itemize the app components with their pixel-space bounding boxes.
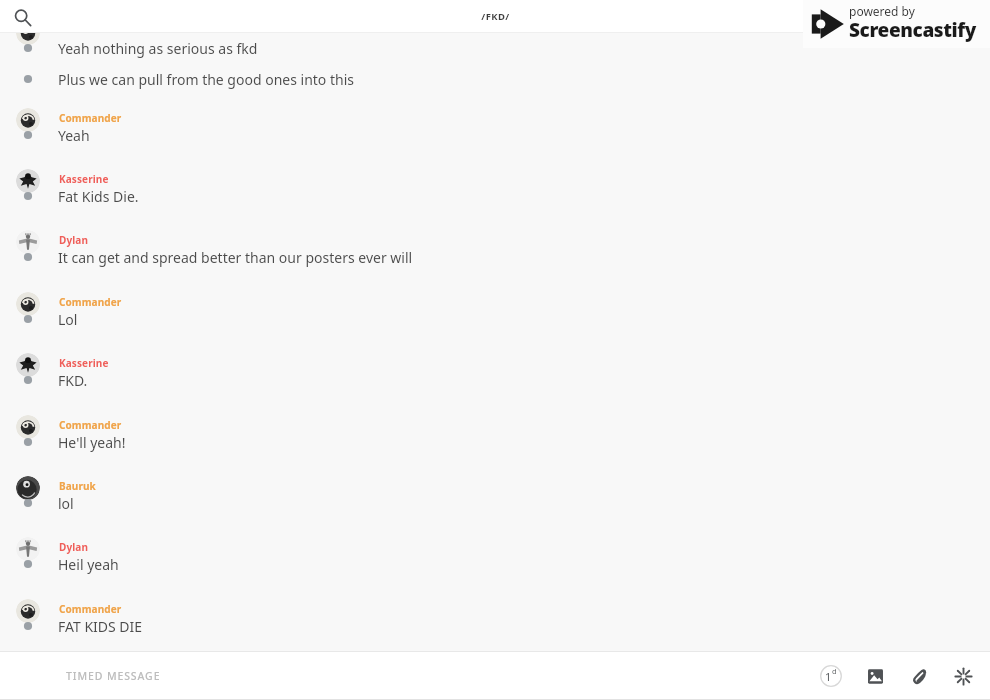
button[interactable]: Dylan [0,536,990,574]
button[interactable]: Call [928,4,954,30]
staticText: FKD. [58,371,88,390]
button[interactable]: Search [9,4,35,30]
button[interactable]: Commander [0,414,990,452]
button[interactable]: Commander [0,291,990,329]
staticText: Dylan [59,233,88,247]
button[interactable]: Send photo [856,657,894,695]
staticText: Heil yeah [58,555,119,574]
staticText: It can get and spread better than our po… [58,248,413,267]
staticText: Fat Kids Die. [58,187,139,206]
button[interactable]: Dylan [0,229,990,267]
button[interactable]: Yeah nothing as serious as fkd [0,32,990,59]
staticText: Yeah [58,126,90,145]
staticText: Lol [58,310,78,329]
button[interactable]: Effects [944,657,982,695]
button[interactable]: Info [958,4,984,30]
button[interactable]: Kasserine [0,168,990,206]
button[interactable]: Commander [0,598,990,636]
staticText: d [832,666,837,676]
staticText: /FKD/ [481,10,510,23]
button[interactable]: Commander [0,107,990,145]
button[interactable]: Message timer 1 day [812,657,850,695]
staticText: Bauruk [59,479,96,493]
staticText: Commander [59,111,122,125]
staticText: Plus we can pull from the good ones into… [58,70,354,89]
staticText: Yeah nothing as serious as fkd [58,39,258,58]
staticText: Kasserine [59,356,109,370]
staticText: 1 [825,669,832,684]
staticText: He'll yeah! [58,433,126,452]
staticText: lol [58,494,74,513]
button[interactable]: Attach file [900,657,938,695]
button[interactable]: Bauruk [0,475,990,513]
staticText: powered by [849,3,915,19]
staticText: Dylan [59,540,88,554]
button[interactable]: Kasserine [0,352,990,390]
staticText: Commander [59,418,122,432]
button[interactable]: Plus we can pull from the good ones into… [0,63,990,90]
staticText: TIMED MESSAGE [66,669,161,683]
staticText: Commander [59,295,122,309]
staticText: Screencastify [849,17,977,43]
staticText: Commander [59,602,122,616]
staticText: Kasserine [59,172,109,186]
staticText: FAT KIDS DIE [58,617,143,636]
